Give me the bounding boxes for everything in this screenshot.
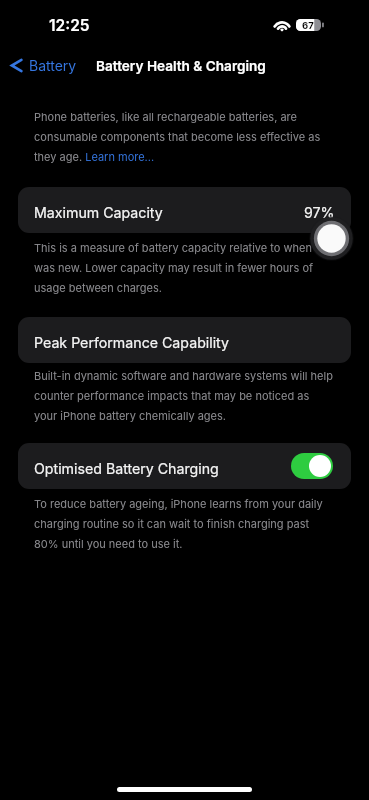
staticText: Maximum Capacity bbox=[34, 204, 163, 221]
button[interactable]: Maximum Capacity bbox=[18, 187, 351, 233]
staticText: This is a measure of battery capacity re… bbox=[34, 241, 322, 295]
staticText: Built-in dynamic software and hardware s… bbox=[34, 369, 333, 423]
staticText: 12:25 bbox=[49, 16, 90, 35]
staticText: 97% bbox=[304, 204, 335, 221]
button[interactable]: Peak Performance Capability bbox=[18, 317, 351, 363]
staticText: Optimised Battery Charging bbox=[34, 460, 219, 477]
button[interactable]: Optimised Battery Charging toggle bbox=[291, 453, 333, 479]
button[interactable]: AssistiveTouch bbox=[310, 217, 353, 260]
button[interactable]: Battery bbox=[0, 52, 87, 79]
button[interactable]: Optimised Battery Charging bbox=[18, 443, 351, 489]
staticText: Peak Performance Capability bbox=[34, 334, 230, 351]
staticText: Battery Health & Charging bbox=[96, 58, 266, 74]
staticText: Battery bbox=[29, 57, 77, 74]
staticText: 67 bbox=[302, 20, 314, 31]
staticText: To reduce battery ageing, iPhone learns … bbox=[34, 497, 323, 551]
staticText: Phone batteries, like all rechargeable b… bbox=[34, 110, 321, 164]
